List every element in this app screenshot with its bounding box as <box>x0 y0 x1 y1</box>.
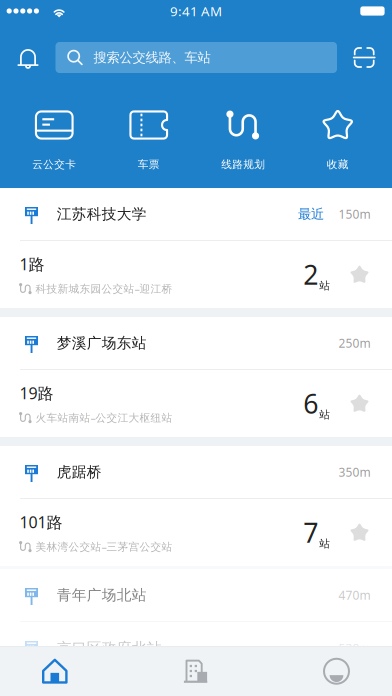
button[interactable]: 1路 <box>0 241 392 308</box>
staticText: 1路 <box>19 253 44 274</box>
staticText: 江苏科技大学 <box>57 205 147 223</box>
button[interactable]: 云公交卡 <box>7 107 101 171</box>
staticText: 梦溪广场东站 <box>57 334 147 352</box>
staticText: 虎踞桥 <box>57 463 102 481</box>
button[interactable]: 101路 <box>0 499 392 566</box>
staticText: 250m <box>338 335 370 351</box>
staticText: 车票 <box>138 158 160 171</box>
button[interactable]: 虎踞桥 <box>0 446 392 498</box>
button[interactable]: 京口区政府北站 <box>0 622 392 674</box>
staticText: 火车站南站–公交江大枢纽站 <box>36 410 173 425</box>
staticText: 搜索公交线路、车站 <box>93 49 210 66</box>
staticText: 350m <box>338 464 370 480</box>
staticText: 科技新城东园公交站–迎江桥 <box>36 281 173 296</box>
button[interactable]: 江苏科技大学 <box>0 188 392 240</box>
button[interactable]: 线路规划 <box>196 107 290 171</box>
button[interactable]: 扫一扫 <box>354 42 375 73</box>
button[interactable]: 附近 <box>183 646 207 696</box>
staticText: 101路 <box>19 511 62 532</box>
staticText: 云公交卡 <box>32 158 76 171</box>
button[interactable]: 梦溪广场东站 <box>0 317 392 369</box>
button[interactable]: 青年广场北站 <box>0 569 392 621</box>
staticText: 站 <box>319 537 330 550</box>
staticText: 6 <box>303 386 318 421</box>
staticText: 收藏 <box>327 158 349 171</box>
staticText: 线路规划 <box>221 158 265 171</box>
staticText: 19路 <box>19 382 53 403</box>
staticText: 京口区政府北站 <box>57 639 162 657</box>
button[interactable]: 收藏 <box>290 107 385 171</box>
staticText: 站 <box>319 279 330 292</box>
button[interactable]: 19路 <box>0 370 392 437</box>
staticText: 530m <box>338 640 370 656</box>
staticText: 站 <box>319 408 330 421</box>
staticText: 青年广场北站 <box>57 586 147 604</box>
staticText: 7 <box>303 515 318 550</box>
staticText: 美林湾公交站–三茅宫公交站 <box>36 539 173 554</box>
staticText: 150m <box>338 206 370 222</box>
button[interactable]: 首页 <box>42 646 68 696</box>
staticText: 最近 <box>298 206 324 222</box>
staticText: 470m <box>338 587 370 603</box>
button[interactable]: 通知 <box>17 42 38 73</box>
button[interactable]: 搜索公交线路、车站 <box>55 42 337 73</box>
staticText: 2 <box>303 257 318 292</box>
button[interactable]: 车票 <box>101 107 196 171</box>
staticText: 9:41 AM <box>170 2 222 20</box>
button[interactable]: 我的 <box>323 646 350 696</box>
